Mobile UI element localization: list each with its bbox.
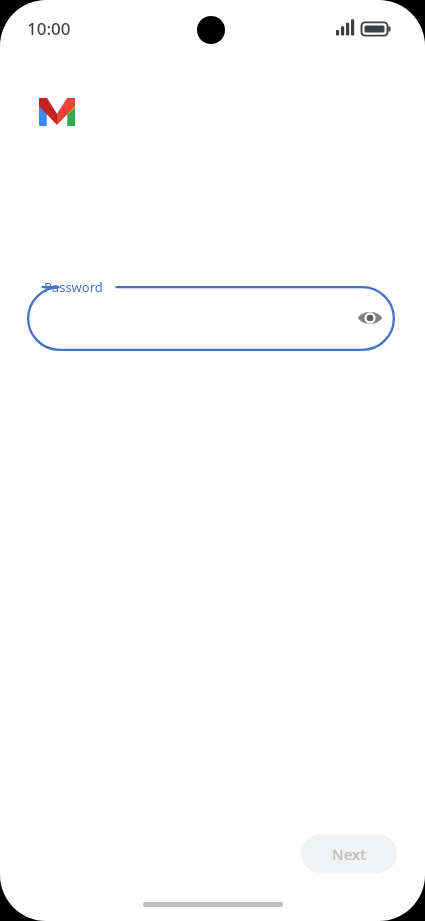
button[interactable]: Next [301, 834, 397, 873]
button[interactable]: Show password [350, 298, 390, 338]
other: Gmail [39, 98, 75, 126]
staticText: Password [44, 278, 103, 296]
staticText: 10:00 [27, 17, 71, 40]
staticText: Next [332, 844, 366, 864]
button[interactable] [27, 286, 395, 351]
